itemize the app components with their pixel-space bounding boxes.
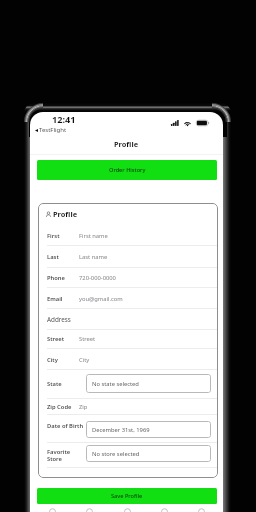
staticText: Last <box>47 253 59 261</box>
staticText: State <box>47 380 62 388</box>
button[interactable]: City <box>38 350 218 370</box>
staticText: Order History <box>109 166 146 174</box>
staticText: Profile <box>53 209 78 219</box>
staticText: TestFlight <box>39 126 67 134</box>
staticText: Zip Code <box>47 403 72 411</box>
staticText: First name <box>79 232 108 240</box>
staticText: you@gmail.com <box>79 295 123 303</box>
staticText: Phone <box>47 274 65 282</box>
staticText: Last name <box>79 253 108 261</box>
button[interactable]: Street <box>38 329 218 349</box>
button[interactable]: No state selected <box>86 374 211 393</box>
staticText: Date of Birth <box>47 422 84 430</box>
button[interactable]: Order History <box>37 160 217 180</box>
staticText: Email <box>47 295 63 303</box>
staticText: Profile <box>114 139 139 149</box>
staticText: 12:41 <box>52 113 76 126</box>
staticText: December 31st, 1969 <box>92 426 150 434</box>
staticText: Zip <box>79 403 88 411</box>
button[interactable]: Tab 1 <box>37 506 67 512</box>
staticText: Address <box>47 315 71 324</box>
button[interactable]: Zip Code <box>38 399 218 415</box>
button[interactable]: Tab 2 <box>74 506 104 512</box>
button[interactable]: Tab 3 <box>112 506 142 512</box>
button[interactable]: Email <box>38 288 218 309</box>
button[interactable]: December 31st, 1969 <box>86 421 211 438</box>
button[interactable]: Phone <box>38 267 218 288</box>
staticText: No store selected <box>92 450 140 458</box>
button[interactable]: First <box>38 225 218 246</box>
staticText: No state selected <box>92 380 139 388</box>
staticText: Favorite Store <box>47 448 71 463</box>
button[interactable]: Tab 4 <box>149 506 179 512</box>
staticText: 720-000-0000 <box>79 274 116 282</box>
staticText: City <box>79 356 90 364</box>
staticText: Save Profile <box>111 492 143 500</box>
button[interactable]: Save Profile <box>37 488 217 504</box>
staticText: Street <box>47 335 65 343</box>
staticText: First <box>47 232 60 240</box>
button[interactable]: Tab 5 <box>186 506 216 512</box>
staticText: Street <box>79 335 96 343</box>
staticText: City <box>47 356 58 364</box>
button[interactable]: No store selected <box>86 445 211 462</box>
button[interactable]: Last <box>38 246 218 268</box>
